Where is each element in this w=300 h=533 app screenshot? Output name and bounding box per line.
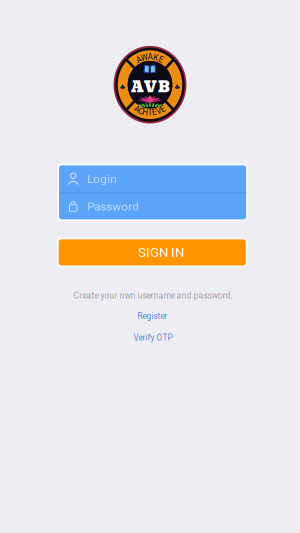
staticText: A xyxy=(136,56,141,66)
staticText: E xyxy=(160,103,165,112)
staticText: Password xyxy=(87,199,139,213)
staticText: W xyxy=(141,54,148,64)
staticText: A xyxy=(147,54,152,63)
button[interactable]: SIGN IN xyxy=(57,237,248,267)
staticText: C xyxy=(139,104,144,114)
button[interactable]: Register xyxy=(129,307,175,325)
staticText: Register xyxy=(137,311,167,321)
staticText: H xyxy=(142,106,148,115)
staticText: E xyxy=(152,106,157,115)
button[interactable]: Verify OTP xyxy=(125,329,180,346)
button[interactable]: Password xyxy=(59,193,246,219)
staticText: AVB xyxy=(131,75,170,99)
staticText: SIGN IN xyxy=(138,245,184,260)
staticText: I xyxy=(149,106,151,116)
staticText: Login xyxy=(87,172,116,186)
button[interactable]: Login xyxy=(59,165,246,192)
staticText: Create your own username and password. xyxy=(73,291,232,300)
staticText: E xyxy=(159,56,164,66)
staticText: A xyxy=(134,103,139,112)
staticText: K xyxy=(153,54,158,64)
staticText: Verify OTP xyxy=(133,333,172,342)
staticText: V xyxy=(156,104,161,114)
